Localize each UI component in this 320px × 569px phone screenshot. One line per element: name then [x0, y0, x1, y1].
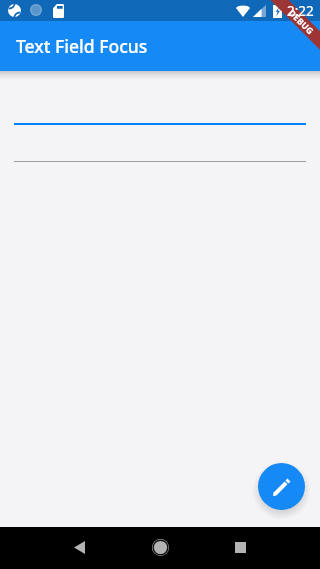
button[interactable]: Recents — [222, 529, 258, 565]
staticText: Text Field Focus — [16, 34, 148, 58]
staticText: 2:22 — [287, 2, 314, 20]
button[interactable]: Edit — [258, 463, 305, 510]
button[interactable]: Home — [142, 529, 178, 565]
button[interactable]: First text field — [14, 87, 306, 125]
button[interactable]: Back — [61, 529, 97, 565]
button[interactable]: Second text field — [14, 126, 306, 162]
staticText: DEBUG — [286, 7, 316, 37]
